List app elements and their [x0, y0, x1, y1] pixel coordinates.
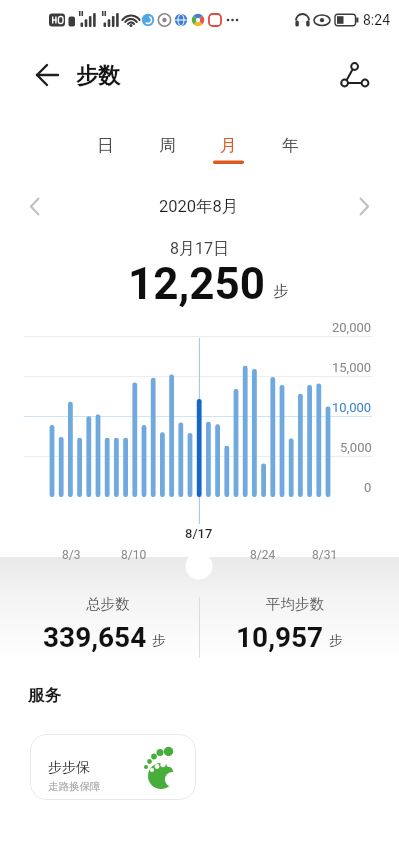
staticText: 总步数 [86, 595, 130, 613]
staticText: 步 [273, 282, 288, 301]
staticText: 步 [152, 632, 166, 649]
button[interactable] [26, 58, 68, 94]
staticText: 步数 [76, 62, 120, 90]
button[interactable]: 10,957 [236, 621, 343, 654]
staticText: 339,654 [43, 621, 147, 654]
staticText: 步 [329, 632, 343, 649]
staticText: 20,000 [332, 320, 372, 335]
staticText: 8:24 [363, 12, 390, 28]
staticText: 5,000 [340, 440, 372, 455]
button[interactable]: 年 [260, 129, 321, 162]
staticText: 2020年8月 [159, 196, 239, 217]
staticText: 8/17 [185, 526, 213, 541]
staticText: 8/3 [62, 548, 81, 562]
staticText: 走路换保障 [48, 780, 101, 793]
staticText: 12,250 [128, 258, 265, 310]
staticText: 10,000 [332, 400, 372, 415]
button[interactable] [345, 190, 379, 224]
staticText: 10,957 [236, 621, 324, 654]
staticText: 周 [159, 135, 176, 156]
staticText: 8/24 [250, 548, 276, 562]
button[interactable]: 月 [198, 129, 259, 162]
staticText: 月 [220, 135, 237, 156]
staticText: 8/10 [121, 548, 147, 562]
button[interactable]: 日 [75, 129, 136, 162]
button[interactable] [334, 56, 378, 96]
button[interactable] [20, 190, 54, 224]
staticText: 步步保 [48, 759, 90, 777]
staticText: 年 [282, 135, 299, 156]
staticText: 日 [97, 135, 114, 156]
button[interactable]: 339,654 [43, 621, 166, 654]
staticText: 服务 [28, 685, 61, 706]
button[interactable]: 步步保 [30, 734, 196, 800]
staticText: 8月17日 [170, 239, 229, 259]
staticText: 0 [364, 480, 372, 495]
staticText: 8/31 [312, 548, 338, 562]
button[interactable]: 周 [137, 129, 198, 162]
staticText: 平均步数 [266, 595, 324, 613]
staticText: 15,000 [332, 360, 372, 375]
